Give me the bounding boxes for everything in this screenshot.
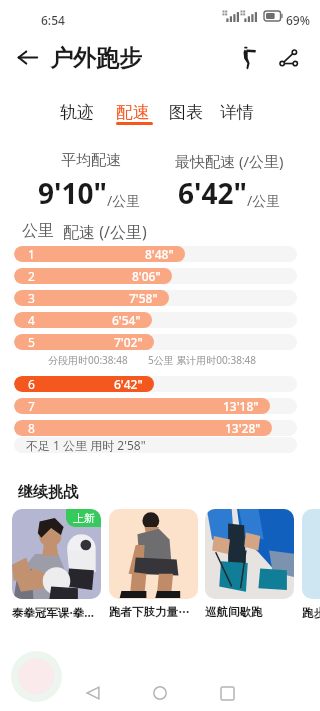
staticText: 最快配速 (/公里) (175, 151, 284, 171)
staticText: 7'02" (114, 334, 143, 350)
staticText: 泰拳冠军课·拳... (12, 605, 101, 621)
staticText: 配速 (/公里) (63, 221, 147, 243)
staticText: 7'58" (129, 290, 158, 306)
staticText: 8'48" (145, 246, 174, 262)
button[interactable]: Back (78, 678, 108, 708)
staticText: 不足 1 公里 用时 2'58" (26, 437, 146, 453)
staticText: 5 (28, 334, 35, 350)
staticText: 6 (28, 376, 35, 392)
staticText: 上新 (73, 511, 95, 525)
staticText: 4 (28, 312, 35, 328)
staticText: 户外跑步 (50, 44, 142, 70)
staticText: /公里 (107, 191, 141, 210)
staticText: 8 (28, 420, 35, 436)
button[interactable]: 轨迹 (49, 97, 105, 127)
staticText: 7 (28, 398, 35, 414)
button[interactable]: Home (145, 678, 175, 708)
staticText: 13'18" (223, 398, 259, 414)
staticText: 跑步... (302, 605, 320, 621)
staticText: 详情 (220, 102, 254, 123)
staticText: 轨迹 (60, 102, 94, 123)
staticText: 13'28" (225, 420, 261, 436)
button[interactable]: 详情 (209, 97, 265, 127)
staticText: 2 (28, 268, 35, 284)
staticText: 6'42" (114, 376, 143, 392)
staticText: 6:54 (41, 12, 65, 28)
staticText: 巡航间歇跑 (205, 605, 294, 619)
button[interactable]: 跑者下肢力量训练 (109, 509, 198, 619)
button[interactable]: 图表 (158, 97, 214, 127)
staticText: 公里 (22, 221, 54, 241)
staticText: 8'06" (132, 268, 161, 284)
button[interactable]: 巡航间歇跑 (205, 509, 294, 619)
staticText: 配速 (116, 102, 150, 123)
button[interactable]: Running mode (234, 44, 262, 72)
staticText: 3 (28, 290, 35, 306)
staticText: 6'54" (112, 312, 141, 328)
staticText: 6'42" (178, 174, 247, 212)
button[interactable]: Recents (212, 678, 242, 708)
button[interactable]: Back (14, 44, 40, 70)
staticText: 图表 (169, 102, 203, 123)
staticText: 69% (286, 12, 310, 28)
staticText: 1 (28, 246, 35, 262)
staticText: 继续挑战 (18, 483, 78, 502)
staticText: 平均配速 (61, 151, 121, 170)
staticText: 9'10" (38, 174, 107, 212)
button[interactable]: 跑步... (302, 509, 320, 621)
staticText: 分段用时00:38:48 (48, 353, 128, 367)
staticText: /公里 (247, 191, 281, 210)
button[interactable]: Share (274, 44, 302, 72)
button[interactable]: 上新 (12, 509, 101, 621)
button[interactable]: 配速 (105, 97, 161, 127)
staticText: 5公里 累计用时00:38:48 (148, 353, 256, 367)
staticText: 跑者下肢力量训练 (109, 605, 198, 619)
